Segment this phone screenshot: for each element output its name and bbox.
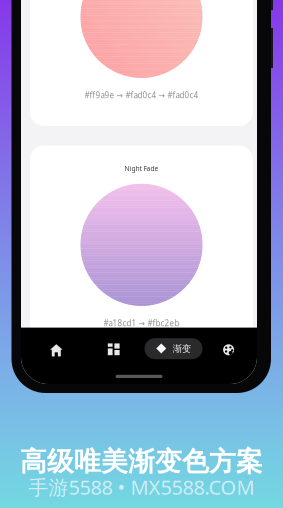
- button[interactable]: 渐变: [144, 338, 202, 359]
- staticText: #ff9a9e → #fad0c4 → #fad0c4: [84, 90, 198, 100]
- staticText: #a18cd1 → #fbc2eb: [103, 318, 179, 328]
- button[interactable]: Collections: [91, 333, 135, 367]
- staticText: 渐变: [173, 343, 191, 354]
- button[interactable]: Palette: [207, 333, 251, 367]
- staticText: 手游5588 • MX5588.COM: [28, 474, 254, 500]
- staticText: Night Fade: [124, 164, 158, 173]
- button[interactable]: Home: [34, 332, 78, 366]
- staticText: 高级唯美渐变色方案: [20, 445, 263, 478]
